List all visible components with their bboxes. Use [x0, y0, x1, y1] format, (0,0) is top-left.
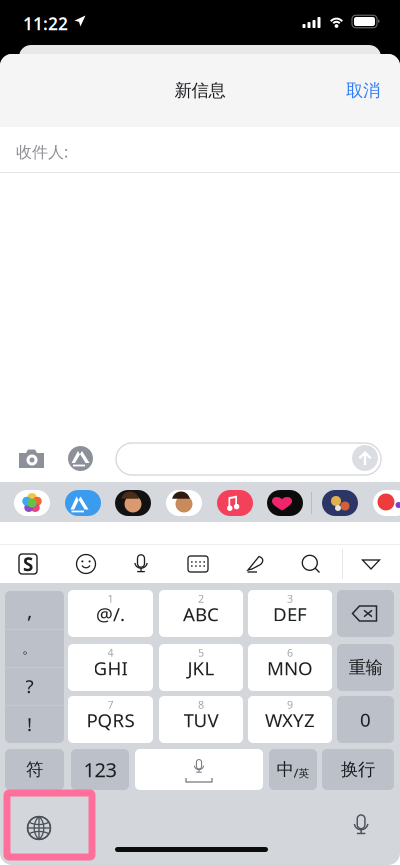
staticText: 2 [198, 591, 204, 606]
staticText: @/. [96, 602, 125, 626]
staticText: 11:22 [23, 12, 68, 35]
button[interactable]: 0 [337, 696, 394, 743]
staticText: 收件人: [16, 141, 68, 162]
staticText: 英 [298, 767, 309, 780]
staticText: / [293, 764, 298, 781]
staticText: DEF [273, 602, 307, 626]
button[interactable]: Game [322, 490, 358, 516]
button[interactable]: Switch keyboard [27, 816, 51, 840]
staticText: PQRS [86, 708, 134, 732]
staticText: 1 [107, 591, 113, 606]
staticText: 中 [276, 759, 293, 780]
staticText: 重输 [348, 657, 382, 678]
staticText: 。 [22, 639, 37, 657]
staticText: MNO [267, 656, 313, 680]
staticText: 4 [107, 645, 113, 660]
button[interactable]: Keypad [187, 553, 209, 575]
button[interactable]: 6 [248, 644, 332, 691]
staticText: 新信息 [174, 80, 225, 101]
button[interactable]: App Store [68, 446, 93, 471]
staticText: 7 [107, 697, 113, 712]
button[interactable]: 4 [68, 644, 153, 691]
button[interactable]: Handwriting [244, 553, 266, 575]
button[interactable]: Send [352, 445, 378, 471]
staticText: 6 [287, 645, 293, 660]
button[interactable]: Search [300, 553, 322, 575]
button[interactable]: Delete [337, 590, 394, 637]
staticText: 换行 [341, 759, 375, 780]
button[interactable]: Memoji [115, 490, 151, 516]
button[interactable]: Voice input [130, 553, 152, 575]
button[interactable]: 123 [71, 749, 129, 790]
button[interactable]: Emoji [75, 553, 97, 575]
button[interactable]: Hide keyboard [360, 553, 382, 575]
staticText: 123 [83, 756, 116, 783]
button[interactable]: Fitness [267, 490, 303, 516]
staticText: WXYZ [265, 708, 315, 732]
staticText: 取消 [346, 80, 380, 101]
button[interactable]: App [373, 490, 400, 516]
button[interactable]: App Store [65, 490, 101, 516]
button[interactable]: , [0, 591, 59, 629]
staticText: ABC [183, 602, 219, 626]
staticText: ! [27, 712, 32, 736]
staticText: 3 [287, 591, 293, 606]
staticText: ? [25, 674, 33, 698]
staticText: 9 [287, 697, 293, 712]
button[interactable]: Music [217, 490, 253, 516]
staticText: 5 [198, 645, 204, 660]
staticText: GHI [93, 656, 127, 680]
button[interactable]: 中 [269, 749, 317, 790]
button[interactable]: ? [0, 667, 59, 705]
button[interactable]: 3 [248, 590, 332, 637]
button[interactable]: Dictation [349, 813, 373, 837]
button[interactable]: 9 [248, 696, 332, 743]
button[interactable]: Camera [17, 447, 46, 470]
button[interactable]: 2 [159, 590, 243, 637]
button[interactable]: 5 [159, 644, 243, 691]
button[interactable]: 8 [159, 696, 243, 743]
button[interactable]: 7 [68, 696, 153, 743]
button[interactable]: 。 [0, 629, 59, 667]
staticText: JKL [187, 656, 214, 680]
staticText: TUV [183, 708, 218, 732]
staticText: 0 [360, 707, 371, 732]
staticText: 符 [26, 759, 43, 780]
button[interactable]: Memoji [166, 490, 202, 516]
staticText: , [27, 597, 32, 623]
staticText: S [23, 552, 33, 576]
button[interactable]: 1 [68, 590, 153, 637]
button[interactable]: Photos [14, 490, 50, 516]
staticText: 8 [198, 697, 204, 712]
button[interactable]: Input method [17, 553, 39, 575]
button[interactable]: 符 [5, 749, 64, 790]
button[interactable]: 重输 [337, 644, 394, 691]
button[interactable]: ! [0, 705, 59, 743]
button[interactable]: 取消 [338, 74, 388, 107]
button[interactable]: 换行 [322, 749, 394, 790]
